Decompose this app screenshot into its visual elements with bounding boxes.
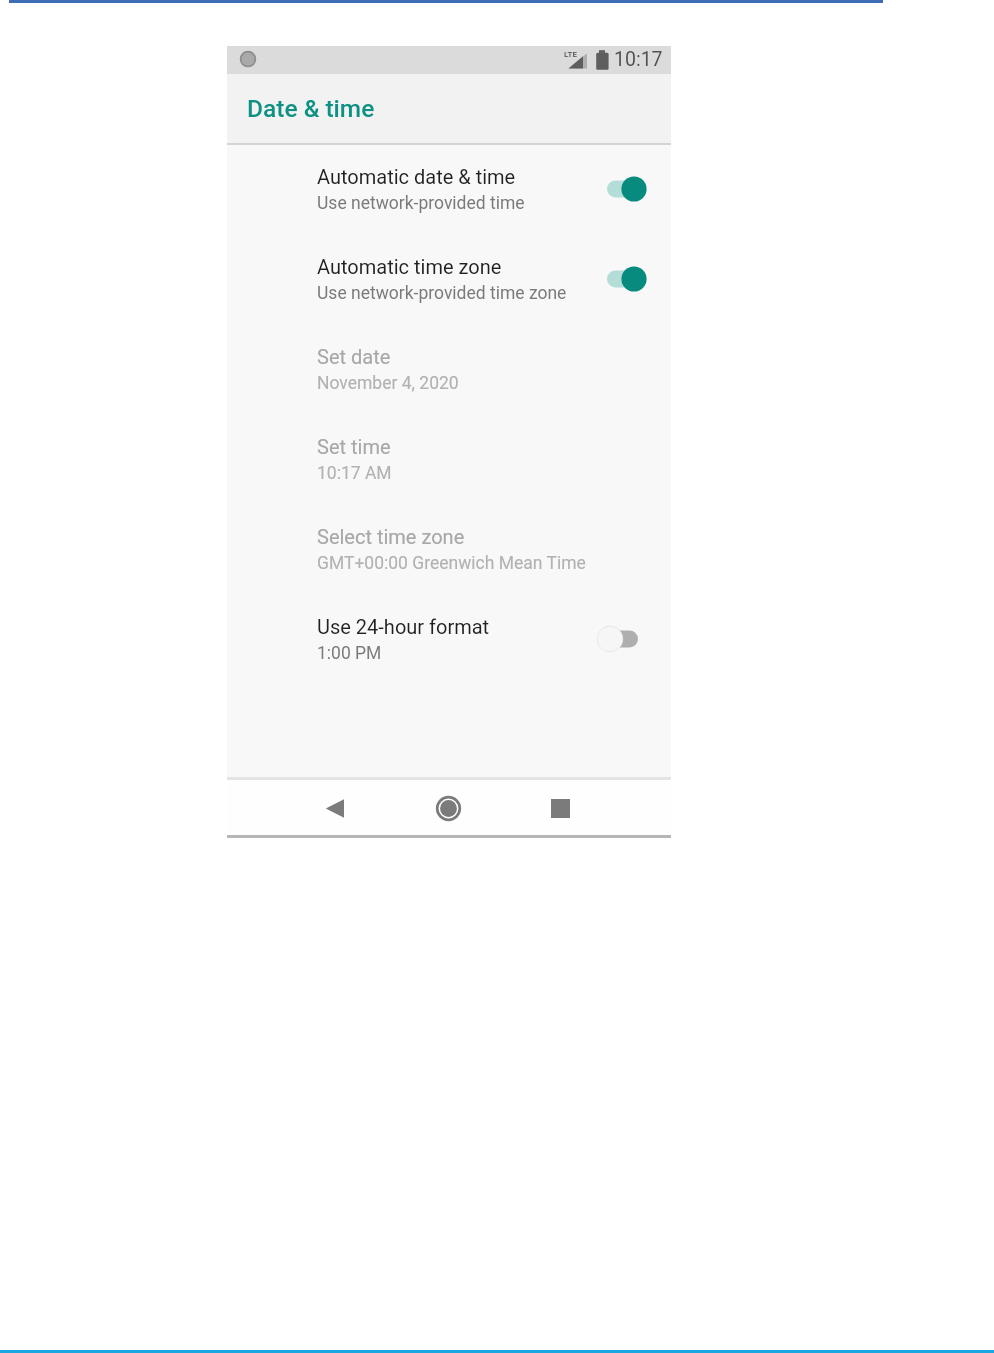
staticText: Automatic time zone [317, 255, 502, 278]
staticText: 10:17 [614, 48, 663, 71]
staticText: 10:17 AM [317, 463, 392, 484]
button[interactable] [596, 625, 641, 653]
button[interactable] [604, 175, 649, 203]
button[interactable] [432, 792, 465, 825]
button[interactable] [321, 791, 353, 823]
staticText: GMT+00:00 Greenwich Mean Time [317, 553, 586, 574]
staticText: Set date [317, 345, 391, 368]
button[interactable] [227, 145, 671, 233]
button[interactable] [227, 325, 671, 413]
button[interactable] [227, 505, 671, 593]
button[interactable] [227, 235, 671, 323]
staticText: Use network-provided time [317, 193, 525, 214]
staticText: Use 24-hour format [317, 615, 490, 638]
button[interactable] [227, 74, 671, 143]
staticText: LTE [564, 50, 577, 59]
button[interactable] [227, 415, 671, 503]
staticText: Automatic date & time [317, 165, 516, 188]
button[interactable] [543, 791, 576, 824]
button[interactable] [604, 265, 649, 293]
staticText: Select time zone [317, 525, 465, 548]
staticText: Date & time [247, 94, 375, 123]
staticText: Set time [317, 435, 391, 458]
staticText: November 4, 2020 [317, 373, 459, 394]
button[interactable] [227, 595, 671, 683]
staticText: Use network-provided time zone [317, 283, 567, 304]
staticText: 1:00 PM [317, 643, 382, 664]
